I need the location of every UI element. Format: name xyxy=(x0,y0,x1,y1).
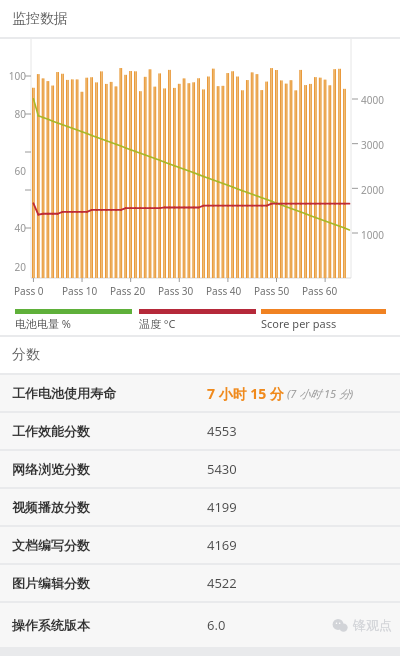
staticText: 80 xyxy=(6,107,26,121)
staticText: 分数 xyxy=(12,346,40,364)
staticText: 网络浏览分数 xyxy=(12,461,207,477)
staticText: 温度 °C xyxy=(139,316,176,331)
staticText: 锋观点 xyxy=(353,617,392,633)
button[interactable]: 视频播放分数 xyxy=(0,489,400,525)
staticText: 操作系统版本 xyxy=(12,617,207,633)
staticText: 电池电量 % xyxy=(15,316,72,331)
staticText: 4199 xyxy=(207,498,237,516)
staticText: 4553 xyxy=(207,422,237,440)
staticText: (7 小时 15 分) xyxy=(287,386,354,401)
staticText: 图片编辑分数 xyxy=(12,575,207,591)
button[interactable]: 图片编辑分数 xyxy=(0,565,400,601)
staticText: 6.0 xyxy=(207,616,226,634)
staticText: 监控数据 xyxy=(12,10,68,28)
button[interactable]: 网络浏览分数 xyxy=(0,451,400,487)
staticText: Pass 40 xyxy=(206,284,242,298)
staticText: 2000 xyxy=(361,183,384,197)
staticText: 工作效能分数 xyxy=(12,423,207,439)
button[interactable]: 操作系统版本 xyxy=(0,603,400,647)
staticText: Score per pass xyxy=(261,316,337,331)
staticText: Pass 0 xyxy=(14,284,44,298)
staticText: 视频播放分数 xyxy=(12,499,207,515)
staticText: 100 xyxy=(6,69,26,83)
staticText: 40 xyxy=(6,221,26,235)
staticText: Pass 10 xyxy=(62,284,98,298)
staticText: 7 小时 15 分 xyxy=(207,384,284,403)
button[interactable]: 工作效能分数 xyxy=(0,413,400,449)
staticText: 5430 xyxy=(207,460,237,478)
staticText: 20 xyxy=(6,260,26,274)
staticText: 3000 xyxy=(361,138,384,152)
staticText: Pass 30 xyxy=(158,284,194,298)
button[interactable]: 文档编写分数 xyxy=(0,527,400,563)
button[interactable]: 监控数据 xyxy=(0,0,400,37)
staticText: Pass 20 xyxy=(110,284,146,298)
staticText: 1000 xyxy=(361,228,384,242)
staticText: 60 xyxy=(6,164,26,178)
staticText: 4000 xyxy=(361,93,384,107)
staticText: 4169 xyxy=(207,536,237,554)
staticText: Pass 60 xyxy=(302,284,338,298)
staticText: Pass 50 xyxy=(254,284,290,298)
button[interactable]: 工作电池使用寿命 xyxy=(0,375,400,411)
staticText: 工作电池使用寿命 xyxy=(12,385,207,401)
staticText: 4522 xyxy=(207,574,237,592)
staticText: 文档编写分数 xyxy=(12,537,207,553)
